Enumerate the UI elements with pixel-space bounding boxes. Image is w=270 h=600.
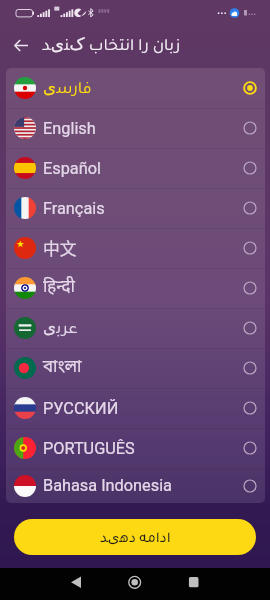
staticText: زبان را انتخاب کنید	[42, 34, 181, 56]
button[interactable]: English	[6, 108, 265, 148]
staticText: عربی	[43, 317, 78, 339]
button[interactable]: हिन्दी	[6, 268, 265, 308]
staticText: فارسی	[43, 77, 92, 99]
button[interactable]: PORTUGUÊS	[6, 428, 265, 468]
button[interactable]: বাংলা	[6, 348, 265, 388]
staticText: PORTUGUÊS	[43, 439, 135, 458]
staticText: বাংলা	[43, 357, 82, 379]
staticText: English	[43, 119, 96, 138]
button[interactable]: РУССКИЙ	[6, 388, 265, 428]
button[interactable]: ادامه دهید	[14, 519, 256, 555]
button[interactable]: 中文	[6, 228, 265, 268]
button[interactable]: فارسی	[6, 68, 265, 108]
staticText: 中文	[43, 236, 77, 260]
button[interactable]: Back	[0, 22, 42, 68]
button[interactable]: Bahasa Indonesia	[6, 468, 265, 503]
staticText: РУССКИЙ	[43, 399, 119, 418]
staticText: Bahasa Indonesia	[43, 476, 172, 495]
button[interactable]: Français	[6, 188, 265, 228]
staticText: Español	[43, 159, 101, 178]
staticText: ادامه دهید	[100, 528, 171, 547]
staticText: हिन्दी	[43, 277, 75, 299]
staticText: Français	[43, 199, 105, 218]
button[interactable]: عربی	[6, 308, 265, 348]
button[interactable]: Español	[6, 148, 265, 188]
